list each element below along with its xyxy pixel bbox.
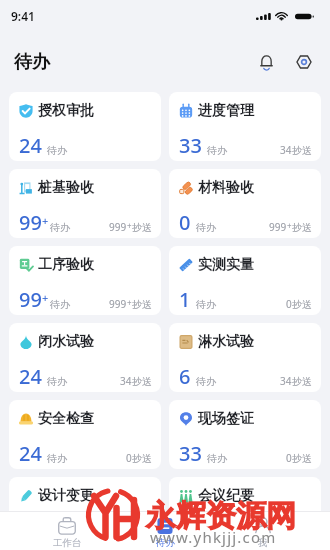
staticText: 抄送 — [292, 298, 312, 311]
staticText: 0 — [286, 451, 292, 465]
staticText: 抄送 — [132, 529, 152, 542]
staticText: 抄送 — [132, 298, 152, 311]
button[interactable]: 会议纪要 — [169, 477, 321, 546]
staticText: 99 — [19, 286, 42, 313]
staticText: 0 — [286, 528, 292, 542]
staticText: 授权审批 — [38, 102, 94, 120]
staticText: 999 — [269, 220, 287, 234]
staticText: 会议纪要 — [198, 487, 254, 505]
staticText: 现场签证 — [198, 410, 254, 428]
staticText: 33 — [179, 440, 202, 467]
staticText: 9:41 — [11, 8, 35, 24]
staticText: 24 — [19, 132, 42, 159]
button[interactable]: 进度管理 — [169, 92, 321, 161]
button[interactable]: 安全检查 — [9, 400, 161, 469]
staticText: 待办 — [47, 144, 67, 157]
button[interactable]: 授权审批 — [9, 92, 161, 161]
staticText: 33 — [179, 132, 202, 159]
staticText: 材料验收 — [198, 179, 254, 197]
staticText: 待办 — [156, 537, 175, 549]
staticText: 5 — [179, 517, 191, 544]
button[interactable]: 设计变更 — [9, 477, 161, 546]
button[interactable]: 工序验收 — [9, 246, 161, 315]
staticText: + — [42, 290, 49, 305]
staticText: 待办 — [196, 221, 216, 234]
button[interactable]: 我 — [214, 512, 312, 550]
staticText: 待办 — [14, 51, 50, 74]
button[interactable]: Settings — [290, 48, 318, 76]
button[interactable]: 工作台 — [18, 512, 116, 550]
staticText: 34 — [280, 374, 292, 388]
button[interactable]: Notifications — [252, 48, 280, 76]
staticText: 0 — [286, 297, 292, 311]
staticText: 待办 — [196, 529, 216, 542]
staticText: 桩基验收 — [38, 179, 94, 197]
staticText: 进度管理 — [198, 102, 254, 120]
staticText: 待办 — [207, 144, 227, 157]
staticText: 待办 — [196, 375, 216, 388]
staticText: 0 — [179, 209, 191, 236]
staticText: 永辉资源网 — [146, 497, 296, 535]
staticText: 待办 — [207, 452, 227, 465]
staticText: 34 — [280, 143, 292, 157]
staticText: 34 — [120, 374, 132, 388]
staticText: 999 — [109, 297, 127, 311]
staticText: 工序验收 — [38, 256, 94, 274]
staticText: 抄送 — [292, 221, 312, 234]
staticText: + — [42, 213, 49, 228]
staticText: + — [127, 297, 132, 308]
button[interactable]: 闭水试验 — [9, 323, 161, 392]
staticText: 待办 — [50, 221, 70, 234]
staticText: 我 — [258, 537, 268, 549]
staticText: + — [127, 220, 132, 231]
staticText: 抄送 — [132, 452, 152, 465]
staticText: 待办 — [50, 298, 70, 311]
staticText: 24 — [19, 363, 42, 390]
staticText: + — [287, 220, 292, 231]
staticText: 抄送 — [132, 375, 152, 388]
staticText: 6 — [179, 363, 191, 390]
staticText: 安全检查 — [38, 410, 94, 428]
staticText: 待办 — [47, 452, 67, 465]
staticText: 抄送 — [292, 529, 312, 542]
button[interactable]: 淋水试验 — [169, 323, 321, 392]
staticText: 24 — [19, 440, 42, 467]
staticText: 99 — [19, 209, 42, 236]
button[interactable]: 现场签证 — [169, 400, 321, 469]
staticText: 999 — [109, 220, 127, 234]
staticText: 抄送 — [292, 144, 312, 157]
staticText: 待办 — [47, 375, 67, 388]
staticText: 实测实量 — [198, 256, 254, 274]
button[interactable]: 实测实量 — [169, 246, 321, 315]
staticText: 待办 — [47, 529, 67, 542]
button[interactable]: 待办 — [116, 512, 214, 550]
staticText: 0 — [126, 451, 132, 465]
button[interactable]: 桩基验收 — [9, 169, 161, 238]
staticText: 工作台 — [53, 537, 82, 549]
staticText: 0 — [126, 528, 132, 542]
staticText: 待办 — [196, 298, 216, 311]
staticText: 抄送 — [292, 375, 312, 388]
staticText: 淋水试验 — [198, 333, 254, 351]
staticText: 抄送 — [132, 221, 152, 234]
staticText: 闭水试验 — [38, 333, 94, 351]
button[interactable]: 材料验收 — [169, 169, 321, 238]
staticText: www.yhkjjj.com — [150, 527, 277, 547]
staticText: 设计变更 — [38, 487, 94, 505]
staticText: 1 — [179, 286, 191, 313]
staticText: 抄送 — [292, 452, 312, 465]
